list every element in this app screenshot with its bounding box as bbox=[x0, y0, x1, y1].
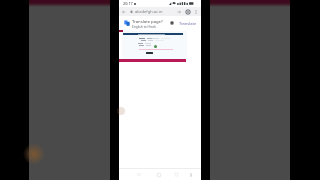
button[interactable]: Forward bbox=[174, 7, 183, 16]
button[interactable]: More options bbox=[192, 8, 200, 16]
staticText: English to Hindi bbox=[132, 25, 156, 29]
button[interactable]: Tabs bbox=[183, 7, 192, 16]
button[interactable]: Menu bbox=[134, 171, 144, 178]
button[interactable]: Share bbox=[172, 171, 181, 178]
staticText: Translate bbox=[179, 21, 197, 26]
button[interactable]: Settings bbox=[168, 19, 176, 27]
staticText: 20:17 bbox=[123, 1, 133, 6]
button[interactable]: Home bbox=[154, 171, 164, 179]
button[interactable]: Translate bbox=[179, 19, 197, 27]
button[interactable] bbox=[146, 52, 153, 54]
button[interactable]: Account bbox=[187, 171, 195, 178]
button[interactable]: Back bbox=[120, 8, 127, 15]
staticText: abcdefgh.ac.in bbox=[135, 9, 163, 14]
staticText: Translate page? bbox=[132, 19, 163, 25]
